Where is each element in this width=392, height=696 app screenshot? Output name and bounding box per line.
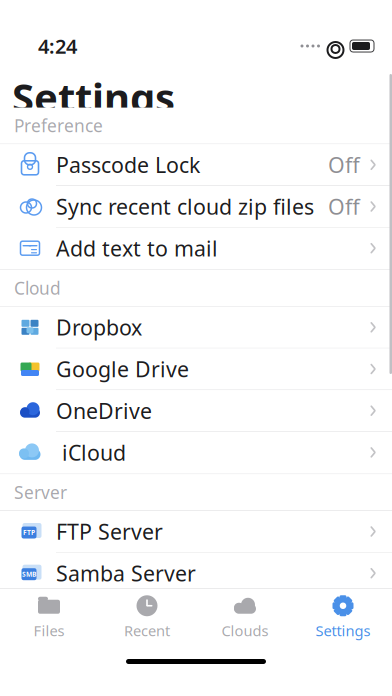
staticText: Cloud: [14, 277, 61, 300]
button[interactable]: Add text to mail: [0, 228, 392, 269]
button[interactable]: Google Drive: [0, 348, 392, 390]
staticText: Settings: [12, 70, 175, 123]
staticText: OneDrive: [56, 396, 152, 425]
button[interactable]: Dropbox: [0, 307, 392, 348]
button[interactable]: Files: [0, 587, 98, 640]
staticText: Recent: [124, 621, 170, 640]
staticText: Files: [33, 621, 64, 640]
button[interactable]: Recent: [98, 587, 196, 640]
button[interactable]: FTP: [0, 511, 392, 553]
staticText: Preference: [14, 114, 103, 137]
staticText: FTP: [23, 528, 35, 537]
staticText: Add text to mail: [56, 234, 218, 262]
staticText: 4:24: [38, 33, 77, 59]
staticText: Passcode Lock: [56, 151, 200, 179]
staticText: Settings: [315, 621, 370, 640]
staticText: FTP Server: [56, 517, 163, 546]
button[interactable]: Passcode Lock: [0, 144, 392, 186]
staticText: SMB: [22, 570, 36, 579]
staticText: Samba Server: [56, 559, 196, 587]
staticText: Server: [14, 481, 67, 504]
button[interactable]: iCloud: [0, 432, 392, 474]
staticText: Off: [328, 151, 360, 179]
button[interactable]: OneDrive: [0, 390, 392, 432]
button[interactable]: Settings: [294, 587, 392, 640]
staticText: Dropbox: [56, 313, 142, 341]
staticText: Clouds: [221, 621, 268, 640]
staticText: Sync recent cloud zip files: [56, 192, 314, 221]
staticText: Google Drive: [56, 355, 189, 383]
staticText: iCloud: [62, 438, 126, 466]
button[interactable]: SMB: [0, 553, 392, 594]
button[interactable]: Clouds: [196, 587, 294, 640]
staticText: Off: [328, 192, 360, 221]
button[interactable]: Sync recent cloud zip files: [0, 186, 392, 228]
